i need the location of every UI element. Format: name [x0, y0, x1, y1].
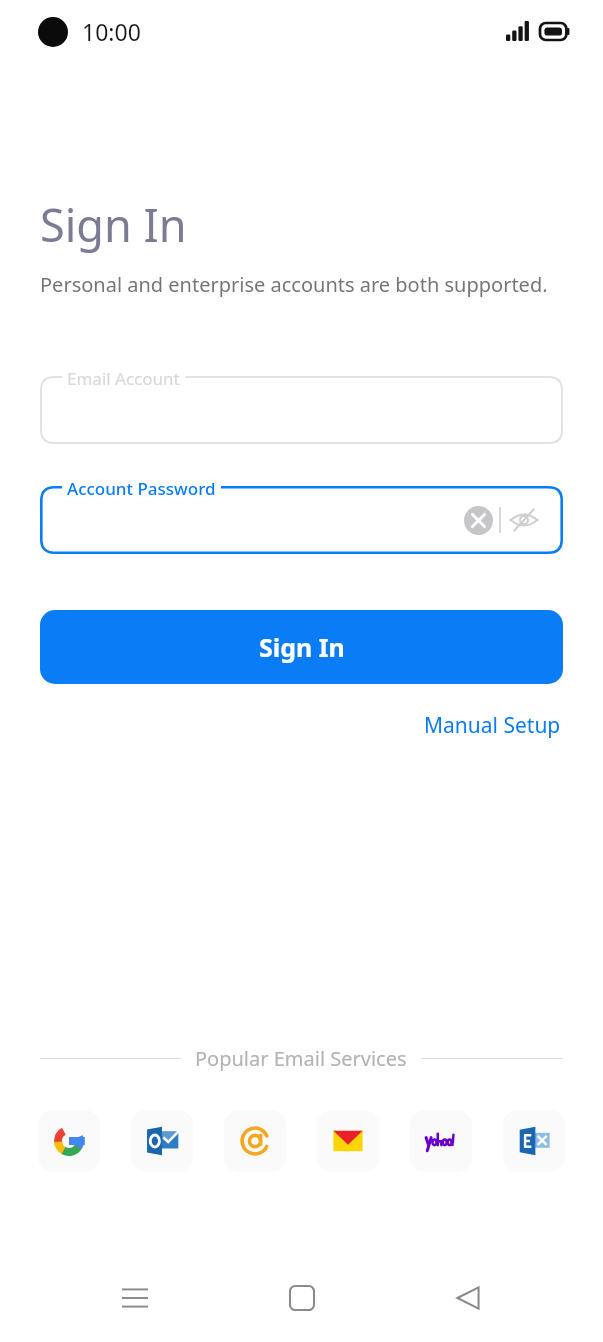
button[interactable]: Outlook	[131, 1110, 193, 1172]
button[interactable]: Recent apps	[103, 1270, 167, 1326]
staticText: Popular Email Services	[195, 1045, 407, 1072]
button[interactable]: Sign In	[40, 610, 563, 684]
button[interactable]: Clear password	[457, 499, 499, 541]
button[interactable]: Manual Setup	[422, 707, 563, 744]
button[interactable]: 163 Mail	[317, 1110, 379, 1172]
button[interactable]: Other email	[224, 1110, 286, 1172]
button[interactable]	[40, 376, 563, 444]
staticText: Manual Setup	[424, 711, 561, 740]
staticText: Email Account	[67, 367, 180, 390]
staticText: Sign In	[259, 630, 345, 664]
button[interactable]: Home	[270, 1270, 334, 1326]
staticText: Personal and enterprise accounts are bot…	[40, 271, 548, 298]
button[interactable]: Google Mail	[38, 1110, 100, 1172]
button[interactable]: Show password	[501, 497, 547, 543]
button[interactable]: Back	[436, 1270, 500, 1326]
staticText: Account Password	[67, 477, 216, 500]
button[interactable]: Yahoo Mail	[410, 1110, 472, 1172]
button[interactable]: Clear password	[40, 486, 563, 554]
staticText: 10:00	[82, 16, 141, 47]
button[interactable]: Exchange	[503, 1110, 565, 1172]
staticText: Sign In	[40, 194, 187, 255]
